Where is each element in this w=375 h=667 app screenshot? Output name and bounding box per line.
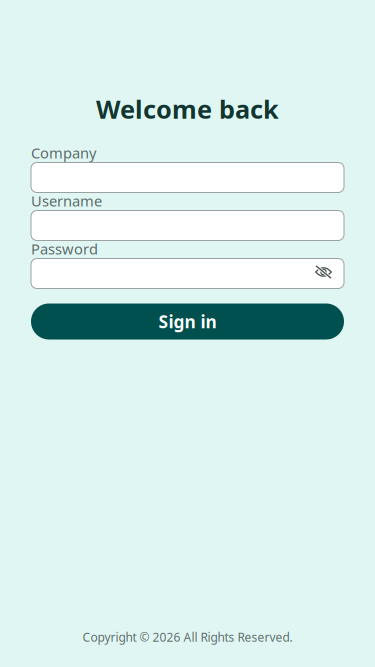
button[interactable]: Company bbox=[31, 162, 344, 192]
staticText: Copyright © 2026 All Rights Reserved. bbox=[82, 629, 292, 645]
staticText: Welcome back bbox=[96, 92, 279, 126]
staticText: Sign in bbox=[158, 310, 216, 333]
button[interactable]: Username bbox=[31, 210, 344, 240]
button[interactable]: Sign in bbox=[31, 303, 344, 339]
staticText: Username bbox=[31, 191, 102, 210]
button[interactable]: Show password bbox=[307, 259, 344, 288]
staticText: Password bbox=[31, 239, 98, 258]
staticText: Company bbox=[31, 143, 96, 162]
button[interactable]: Password bbox=[31, 258, 344, 288]
